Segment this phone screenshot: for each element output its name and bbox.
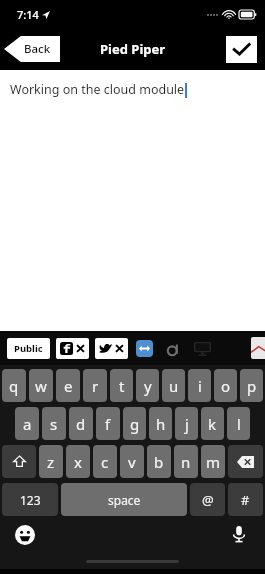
- staticText: w: [35, 376, 47, 396]
- button[interactable]: Facebook off: [56, 338, 89, 359]
- button[interactable]: space: [61, 483, 187, 516]
- button[interactable]: k: [201, 407, 224, 440]
- button[interactable]: h: [149, 407, 172, 440]
- staticText: u: [169, 376, 179, 396]
- button[interactable]: @: [190, 483, 225, 516]
- button[interactable]: Done: [226, 36, 257, 63]
- button[interactable]: o: [214, 369, 237, 402]
- button[interactable]: Twitter off: [95, 338, 128, 359]
- staticText: g: [130, 414, 140, 434]
- staticText: k: [208, 414, 217, 434]
- button[interactable]: d: [69, 407, 93, 440]
- button[interactable]: f: [96, 407, 120, 440]
- staticText: c: [101, 452, 109, 472]
- button[interactable]: i: [188, 369, 211, 402]
- staticText: p: [247, 376, 257, 396]
- staticText: Public: [14, 342, 43, 355]
- button[interactable]: j: [175, 407, 198, 440]
- button[interactable]: s: [42, 407, 66, 440]
- staticText: l: [237, 414, 241, 434]
- button[interactable]: 123: [2, 483, 58, 516]
- button[interactable]: y: [136, 369, 159, 402]
- button[interactable]: Shift: [2, 445, 36, 478]
- button[interactable]: b: [147, 445, 171, 478]
- button[interactable]: t: [110, 369, 133, 402]
- button[interactable]: g: [123, 407, 146, 440]
- button[interactable]: u: [162, 369, 185, 402]
- staticText: q: [9, 376, 19, 396]
- staticText: Working on the cloud module: [10, 81, 185, 98]
- button[interactable]: Public: [7, 338, 50, 359]
- button[interactable]: Backspace: [228, 445, 263, 478]
- staticText: b: [154, 452, 164, 472]
- staticText: h: [156, 414, 166, 434]
- button[interactable]: Emoji: [15, 525, 35, 545]
- button[interactable]: Display: [192, 339, 212, 359]
- button[interactable]: c: [93, 445, 117, 478]
- staticText: r: [92, 376, 99, 396]
- button[interactable]: #: [228, 483, 263, 516]
- staticText: space: [108, 492, 141, 508]
- button[interactable]: m: [201, 445, 225, 478]
- staticText: @: [202, 491, 214, 509]
- button[interactable]: More: [251, 337, 265, 359]
- staticText: e: [64, 376, 73, 396]
- button[interactable]: App: [165, 341, 181, 357]
- staticText: s: [50, 414, 58, 434]
- button[interactable]: q: [2, 369, 26, 402]
- button[interactable]: Back: [4, 36, 60, 62]
- button[interactable]: x: [66, 445, 90, 478]
- staticText: o: [221, 376, 231, 396]
- staticText: i: [198, 376, 202, 396]
- button[interactable]: e: [56, 369, 80, 402]
- staticText: d: [76, 414, 86, 434]
- button[interactable]: l: [227, 407, 250, 440]
- button[interactable]: w: [29, 369, 53, 402]
- button[interactable]: a: [15, 407, 39, 440]
- staticText: t: [119, 376, 125, 396]
- staticText: Pied Piper: [100, 40, 166, 58]
- button[interactable]: z: [39, 445, 63, 478]
- button[interactable]: Resize: [136, 340, 153, 357]
- staticText: a: [23, 414, 32, 434]
- staticText: v: [128, 452, 136, 472]
- staticText: m: [206, 452, 221, 472]
- button[interactable]: r: [83, 369, 107, 402]
- staticText: Back: [24, 41, 51, 57]
- staticText: 7:14: [17, 7, 39, 22]
- staticText: x: [74, 452, 82, 472]
- button[interactable]: p: [240, 369, 263, 402]
- staticText: #: [241, 491, 250, 509]
- staticText: y: [144, 376, 152, 396]
- staticText: 123: [20, 492, 41, 508]
- staticText: n: [181, 452, 191, 472]
- button[interactable]: v: [120, 445, 144, 478]
- staticText: j: [185, 414, 189, 434]
- button[interactable]: n: [174, 445, 198, 478]
- staticText: f: [105, 414, 111, 434]
- staticText: z: [47, 452, 55, 472]
- button[interactable]: Voice input: [229, 524, 249, 544]
